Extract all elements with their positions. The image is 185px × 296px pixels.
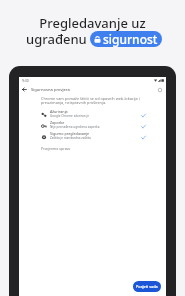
- button[interactable]: Zaporke: [41, 119, 146, 130]
- staticText: Chrome vam pomaže štititi se od opasnih …: [41, 96, 146, 105]
- staticText: Nije pronađena ugrožena zaporka: [50, 125, 100, 129]
- staticText: sigurnost: [103, 31, 158, 47]
- button[interactable]: Posjeti sada: [133, 281, 161, 292]
- button[interactable]: Pomoć: [155, 85, 164, 94]
- staticText: Sigurno pregledavanje: [50, 131, 90, 136]
- staticText: Sigurnosna provjera: [31, 87, 70, 93]
- staticText: Google Chrome ažuriran je: [50, 114, 90, 118]
- button[interactable]: Sigurno pregledavanje: [41, 130, 146, 141]
- staticText: ugrađenu: [26, 30, 87, 48]
- button[interactable]: Ažuriranja: [41, 108, 146, 119]
- staticText: Zaštita je standardna zaštita: [50, 136, 91, 140]
- staticText: Ažuriranja: [50, 109, 68, 114]
- staticText: Pregledavanje uz: [39, 14, 146, 32]
- button[interactable]: Natrag: [20, 85, 29, 94]
- staticText: 9:30: [22, 78, 29, 83]
- staticText: Posjeti sada: [136, 284, 158, 289]
- staticText: Provjereno upravo: [41, 146, 71, 151]
- staticText: Zaporke: [50, 120, 65, 125]
